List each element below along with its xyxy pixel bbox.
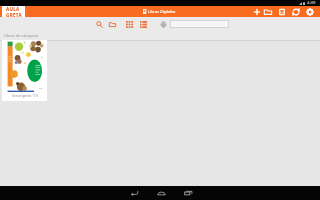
button[interactable]: Search (94, 19, 104, 29)
staticText: AULA (6, 6, 20, 12)
button[interactable]: Grid view (124, 19, 134, 29)
button[interactable]: Folder (262, 6, 274, 17)
button[interactable]: Sync (290, 6, 302, 17)
staticText: Descargando: 11% (12, 94, 39, 98)
button[interactable]: Descargando: 11% (2, 40, 47, 101)
button[interactable]: List view (138, 19, 148, 29)
staticText: GRETA (6, 12, 22, 17)
staticText: Libros Digitales (148, 9, 176, 14)
button[interactable]: Add (251, 6, 263, 17)
button[interactable]: Aula Greta (2, 6, 25, 17)
button[interactable]: Settings (304, 6, 316, 17)
button[interactable]: Back (127, 186, 141, 200)
button[interactable]: Libros Digitales (143, 9, 176, 14)
staticText: Libros de categoría (4, 33, 39, 38)
button[interactable]: Open folder (107, 19, 117, 29)
staticText: 4:39 (307, 0, 316, 6)
button[interactable]: Search field (170, 20, 229, 28)
button[interactable]: Library (276, 6, 288, 17)
button[interactable]: Print (158, 19, 168, 29)
button[interactable]: Recent apps (181, 186, 195, 200)
button[interactable]: Home (154, 186, 168, 200)
